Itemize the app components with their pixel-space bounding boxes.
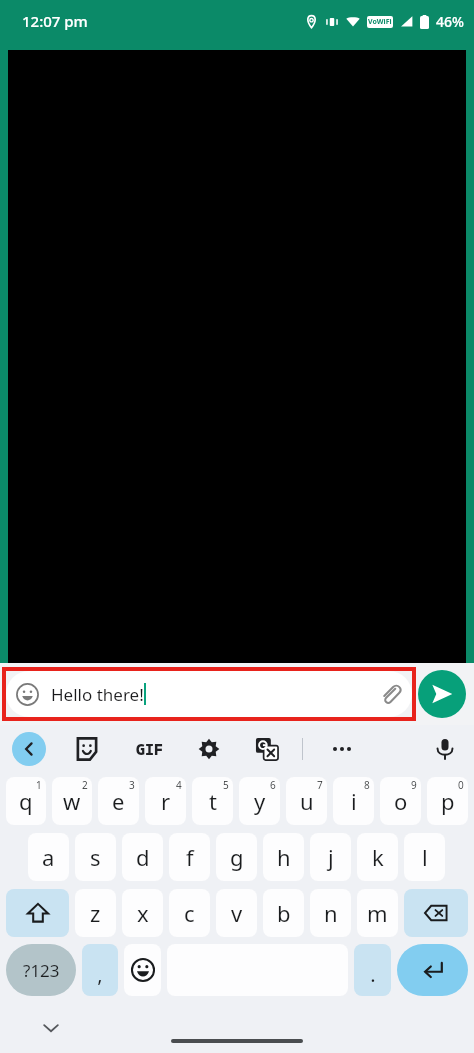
staticText: a xyxy=(42,842,55,872)
staticText: VoWiFi xyxy=(368,17,392,27)
staticText: y xyxy=(254,786,266,816)
staticText: l xyxy=(422,842,428,872)
staticText: ?123 xyxy=(23,959,60,982)
other: Attach xyxy=(378,682,402,706)
staticText: h xyxy=(277,842,291,872)
staticText: s xyxy=(90,842,101,872)
staticText: 4 xyxy=(176,778,182,792)
staticText: 12:07 pm xyxy=(22,11,88,31)
button[interactable]: o xyxy=(380,777,421,825)
button[interactable]: r xyxy=(145,777,186,825)
staticText: b xyxy=(277,898,291,928)
staticText: . xyxy=(370,961,376,988)
button[interactable]: Shift xyxy=(6,889,69,937)
staticText: o xyxy=(394,786,408,816)
button[interactable]: Hide keyboard xyxy=(38,1015,64,1041)
button[interactable]: Voice input xyxy=(428,732,462,766)
button[interactable]: x xyxy=(122,889,163,937)
staticText: p xyxy=(441,786,455,816)
staticText: GIF xyxy=(136,739,164,759)
button[interactable]: t xyxy=(192,777,233,825)
staticText: n xyxy=(324,898,338,928)
button[interactable]: s xyxy=(75,833,116,881)
button[interactable]: j xyxy=(310,833,351,881)
button[interactable]: d xyxy=(122,833,163,881)
staticText: 9 xyxy=(411,778,417,792)
staticText: Hello there! xyxy=(51,683,144,706)
other: Emoji xyxy=(16,683,39,706)
button[interactable]: q xyxy=(6,777,46,825)
button[interactable]: g xyxy=(216,833,257,881)
staticText: 0 xyxy=(458,778,464,792)
button[interactable]: p xyxy=(427,777,468,825)
button[interactable]: k xyxy=(357,833,398,881)
button[interactable]: v xyxy=(216,889,257,937)
staticText: i xyxy=(351,786,357,816)
button[interactable]: Enter xyxy=(397,944,468,996)
staticText: f xyxy=(186,842,194,872)
button[interactable]: i xyxy=(333,777,374,825)
staticText: g xyxy=(230,842,244,872)
button[interactable]: Send xyxy=(418,670,466,718)
staticText: 8 xyxy=(364,778,370,792)
staticText: w xyxy=(63,786,81,816)
button[interactable]: Settings xyxy=(192,732,226,766)
button[interactable]: Emoji xyxy=(124,944,161,996)
button[interactable]: ?123 xyxy=(6,944,76,996)
button[interactable]: m xyxy=(357,889,398,937)
button[interactable]: z xyxy=(75,889,116,937)
staticText: 46% xyxy=(436,12,464,31)
staticText: d xyxy=(136,842,150,872)
button[interactable]: f xyxy=(169,833,210,881)
button[interactable]: a xyxy=(28,833,69,881)
staticText: z xyxy=(90,898,101,928)
button[interactable]: , xyxy=(82,944,118,996)
button[interactable]: w xyxy=(52,777,92,825)
staticText: t xyxy=(209,786,217,816)
button[interactable]: Back xyxy=(12,732,46,766)
staticText: q xyxy=(19,786,33,816)
staticText: v xyxy=(231,898,243,928)
staticText: e xyxy=(112,786,125,816)
staticText: 7 xyxy=(317,778,323,792)
button[interactable]: c xyxy=(169,889,210,937)
button[interactable]: Backspace xyxy=(404,889,468,937)
staticText: c xyxy=(184,898,195,928)
button[interactable]: Stickers xyxy=(70,732,104,766)
staticText: u xyxy=(300,786,314,816)
button[interactable]: . xyxy=(354,944,391,996)
staticText: j xyxy=(328,842,334,872)
staticText: m xyxy=(367,898,388,928)
staticText: 1 xyxy=(36,778,42,792)
button[interactable]: More options xyxy=(325,732,359,766)
button[interactable]: Emoji xyxy=(6,671,412,717)
staticText: 2 xyxy=(82,778,88,792)
staticText: 3 xyxy=(129,778,135,792)
button[interactable]: GIF xyxy=(130,729,170,769)
staticText: k xyxy=(372,842,384,872)
button[interactable]: b xyxy=(263,889,304,937)
button[interactable]: n xyxy=(310,889,351,937)
button[interactable]: Translate xyxy=(250,732,284,766)
staticText: 5 xyxy=(223,778,229,792)
button[interactable]: u xyxy=(286,777,327,825)
button[interactable]: e xyxy=(98,777,139,825)
button[interactable]: h xyxy=(263,833,304,881)
staticText: 6 xyxy=(270,778,276,792)
staticText: , xyxy=(97,961,103,988)
staticText: x xyxy=(137,898,149,928)
button[interactable]: y xyxy=(239,777,280,825)
staticText: r xyxy=(161,786,171,816)
button[interactable]: l xyxy=(404,833,445,881)
